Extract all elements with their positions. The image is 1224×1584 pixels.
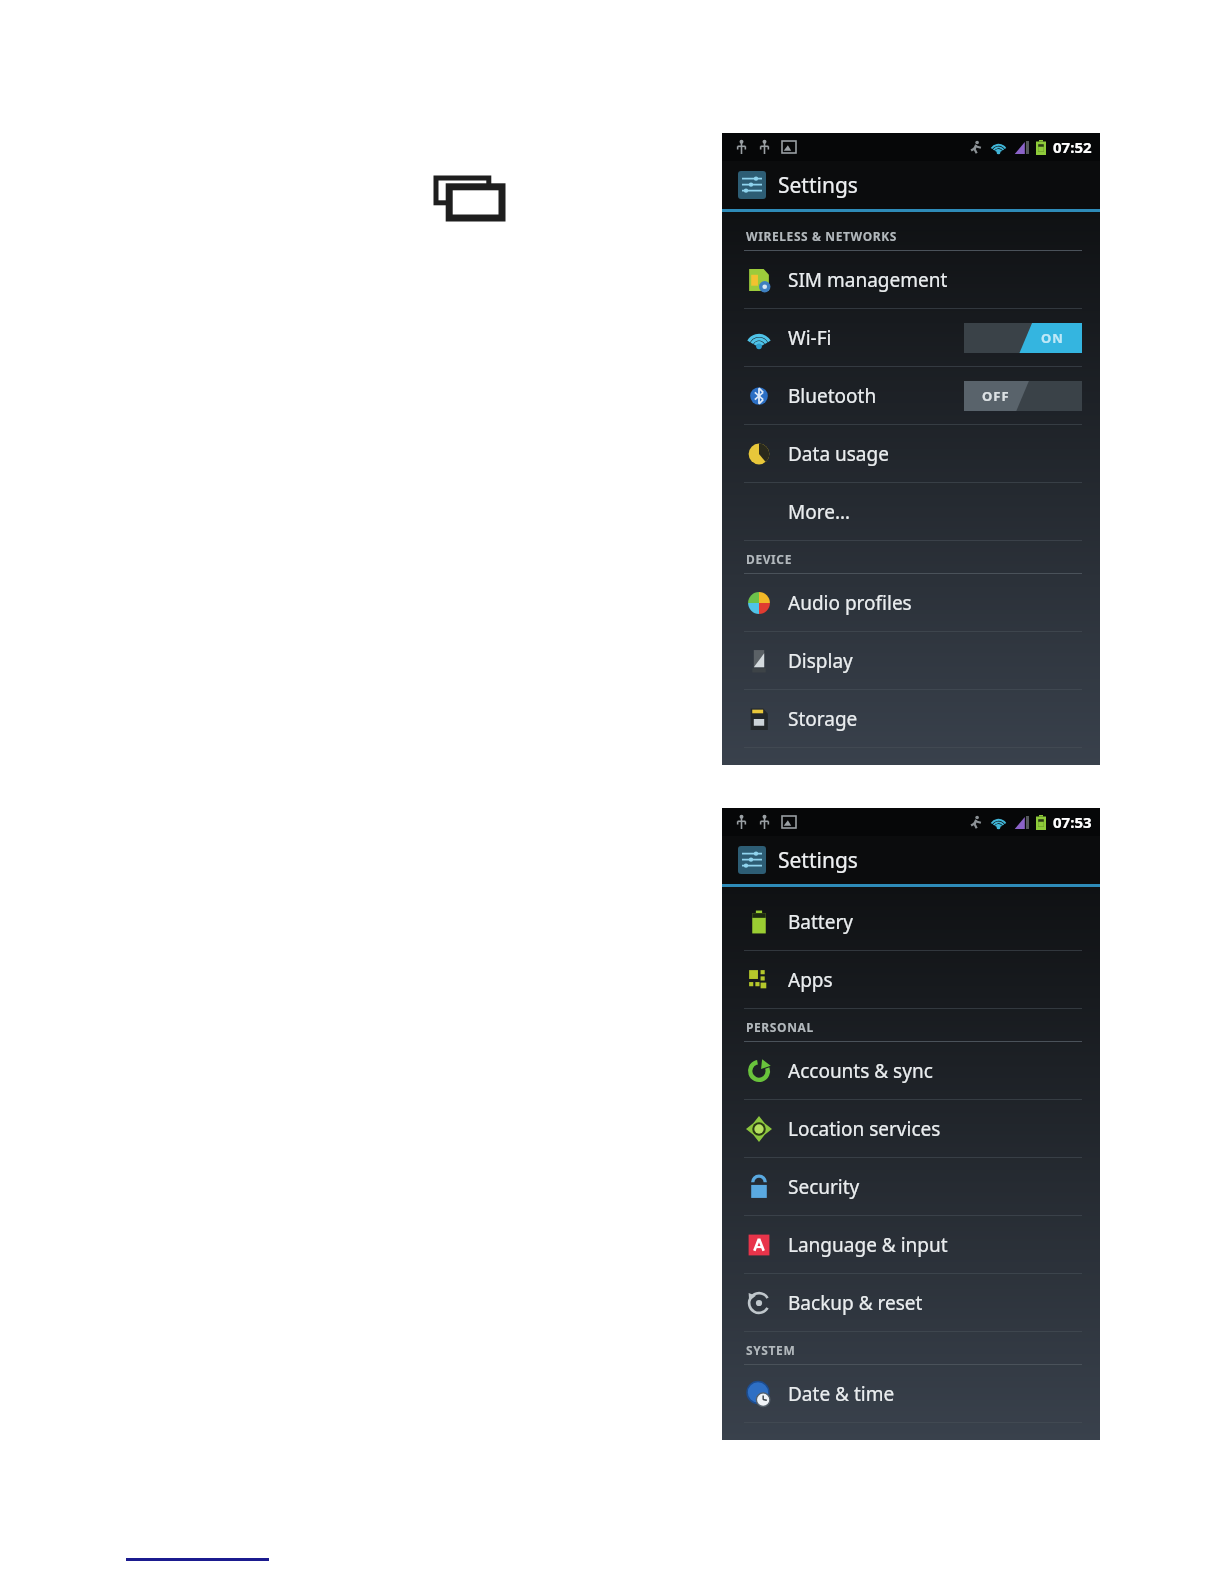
button[interactable]: Display [722,632,1100,689]
button[interactable]: Settings [722,836,1100,884]
staticText: SIM management [788,267,948,293]
staticText: ON [1041,329,1064,347]
staticText: Audio profiles [788,590,912,616]
staticText: 07:53 [1053,812,1092,832]
staticText: Apps [788,967,833,993]
staticText: Display [788,648,853,674]
button[interactable]: Date & time [722,1365,1100,1422]
staticText: OFF [982,387,1010,405]
button[interactable]: Language & input [722,1216,1100,1273]
staticText: Backup & reset [788,1290,923,1316]
button[interactable]: Backup & reset [722,1274,1100,1331]
button[interactable]: Battery [722,893,1100,950]
staticText: Date & time [788,1381,895,1407]
button[interactable]: Bluetooth [722,367,1100,424]
staticText: Data usage [788,441,889,467]
staticText: Security [788,1174,860,1200]
staticText: More… [788,499,850,525]
button[interactable]: Off [964,381,1082,411]
staticText: Accounts & sync [788,1058,933,1084]
staticText: Location services [788,1116,941,1142]
staticText: SYSTEM [746,1342,796,1358]
button[interactable]: Settings [722,161,1100,209]
button[interactable]: Location services [722,1100,1100,1157]
staticText: Settings [778,846,858,875]
staticText: WIRELESS & NETWORKS [746,228,897,244]
button[interactable]: Audio profiles [722,574,1100,631]
button[interactable]: Apps [722,951,1100,1008]
staticText: Settings [778,171,858,200]
staticText: DEVICE [746,551,792,567]
button[interactable]: On [964,323,1082,353]
staticText: Bluetooth [788,383,877,409]
staticText: Storage [788,706,858,732]
staticText: Language & input [788,1232,948,1258]
button[interactable]: Security [722,1158,1100,1215]
button[interactable]: Storage [722,690,1100,747]
staticText: Wi-Fi [788,325,832,351]
button[interactable]: Data usage [722,425,1100,482]
button[interactable]: SIM management [722,251,1100,308]
staticText: PERSONAL [746,1019,814,1035]
staticText: 07:52 [1053,137,1092,157]
staticText: Battery [788,909,853,935]
button[interactable]: Wi-Fi [722,309,1100,366]
button[interactable]: More… [722,483,1100,540]
button[interactable]: Accounts & sync [722,1042,1100,1099]
